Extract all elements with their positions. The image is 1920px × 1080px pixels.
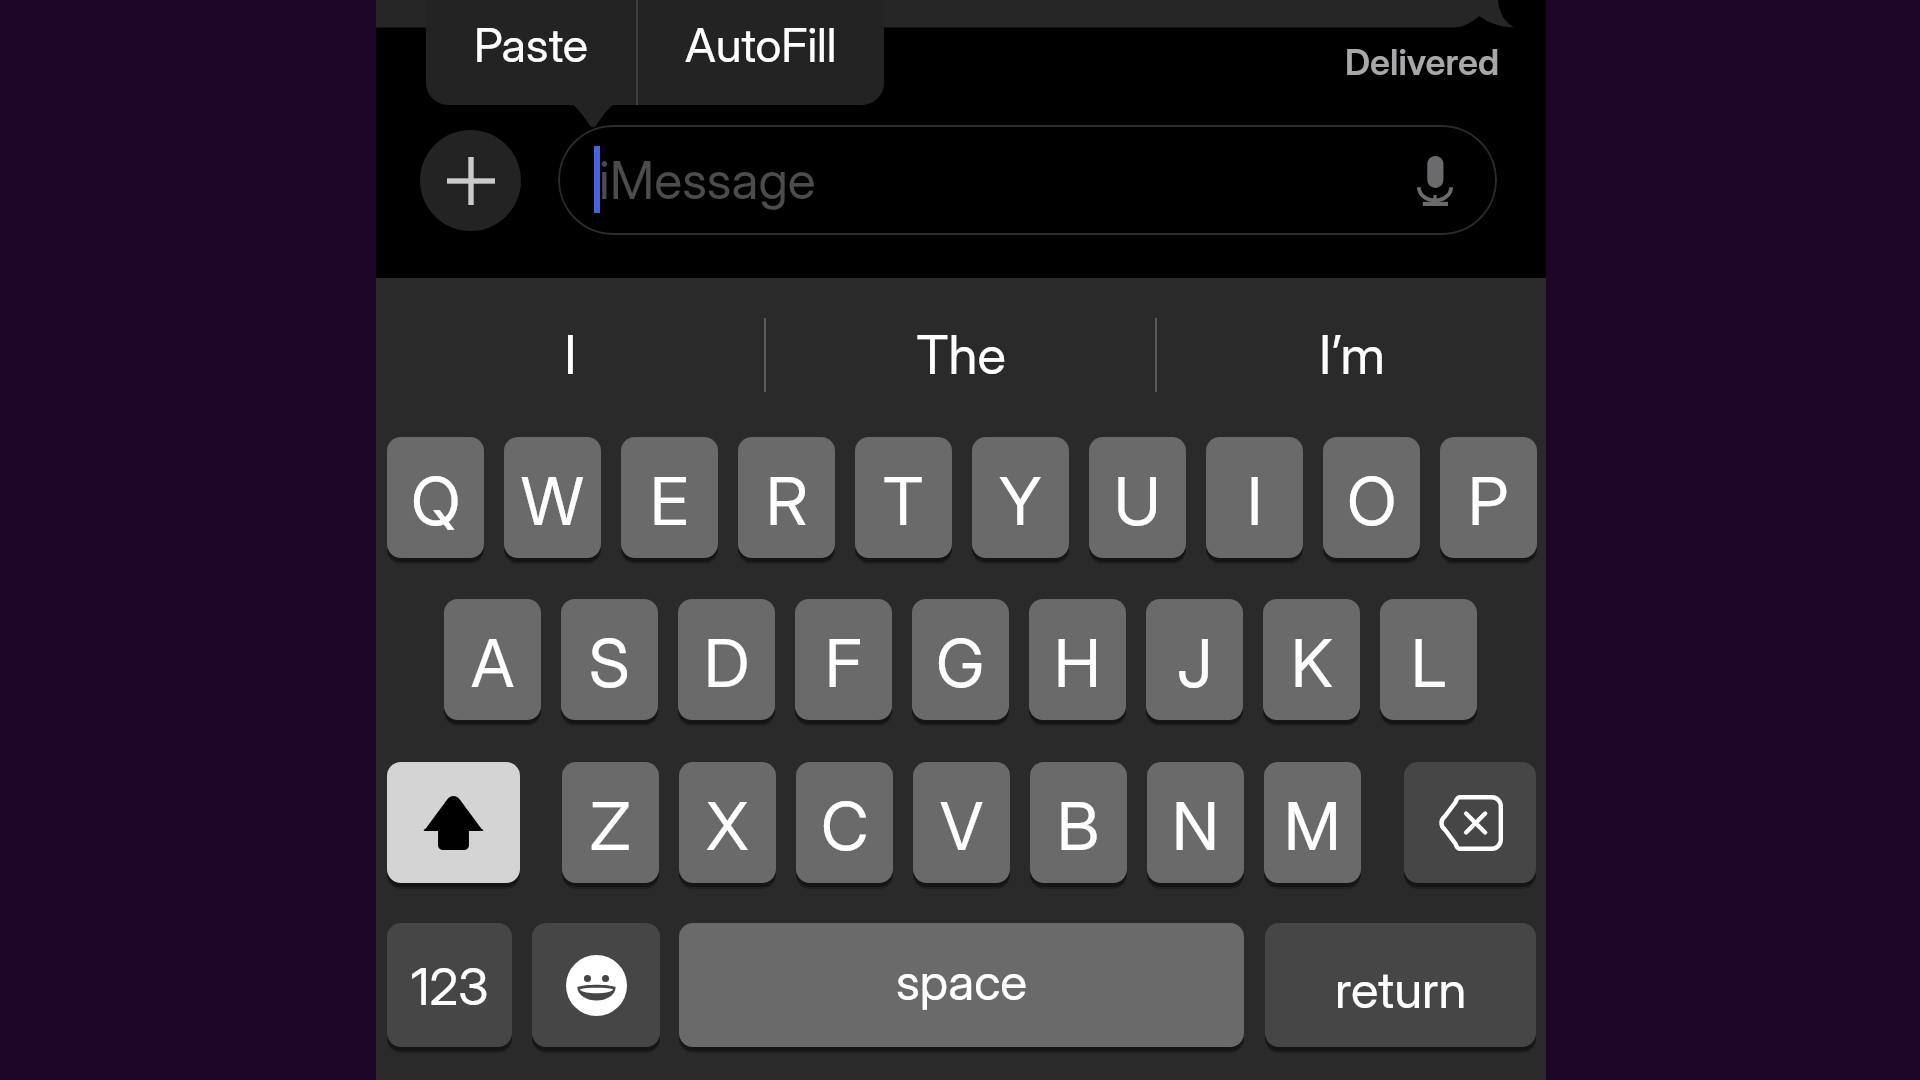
- button[interactable]: return: [1265, 923, 1536, 1047]
- button[interactable]: U: [1089, 437, 1186, 558]
- staticText: iMessage: [599, 149, 816, 212]
- button[interactable]: M: [1264, 762, 1361, 883]
- button[interactable]: G: [912, 599, 1009, 720]
- staticText: L: [1411, 623, 1447, 703]
- button[interactable]: N: [1147, 762, 1244, 883]
- button[interactable]: V: [913, 762, 1010, 883]
- button[interactable]: F: [795, 599, 892, 720]
- staticText: I: [564, 323, 577, 387]
- button[interactable]: O: [1323, 437, 1420, 558]
- staticText: J: [1177, 623, 1213, 703]
- button[interactable]: R: [738, 437, 835, 558]
- staticText: M: [1284, 786, 1341, 866]
- button[interactable]: J: [1146, 599, 1243, 720]
- button[interactable]: X: [679, 762, 776, 883]
- staticText: return: [1335, 959, 1467, 1021]
- button[interactable]: D: [678, 599, 775, 720]
- staticText: Y: [999, 461, 1042, 541]
- button[interactable]: Backspace: [1404, 762, 1536, 883]
- button[interactable]: Add attachment: [420, 130, 521, 231]
- button[interactable]: space: [679, 923, 1244, 1047]
- staticText: Q: [411, 461, 461, 541]
- button[interactable]: L: [1380, 599, 1477, 720]
- button[interactable]: C: [796, 762, 893, 883]
- button[interactable]: B: [1030, 762, 1127, 883]
- staticText: F: [825, 623, 862, 703]
- button[interactable]: I’m: [1157, 278, 1546, 431]
- staticText: H: [1054, 623, 1101, 703]
- staticText: AutoFill: [685, 16, 837, 73]
- button[interactable]: E: [621, 437, 718, 558]
- button[interactable]: K: [1263, 599, 1360, 720]
- button[interactable]: The: [766, 278, 1155, 431]
- staticText: D: [704, 623, 750, 703]
- staticText: N: [1172, 786, 1219, 866]
- button[interactable]: Q: [387, 437, 484, 558]
- button[interactable]: Paste: [426, 0, 636, 105]
- staticText: R: [766, 461, 808, 541]
- staticText: space: [896, 952, 1028, 1012]
- button[interactable]: T: [855, 437, 952, 558]
- button[interactable]: Y: [972, 437, 1069, 558]
- staticText: O: [1347, 461, 1397, 541]
- staticText: E: [650, 461, 689, 541]
- staticText: P: [1468, 461, 1509, 541]
- staticText: 123: [411, 956, 489, 1018]
- button[interactable]: A: [444, 599, 541, 720]
- button[interactable]: 123: [387, 923, 512, 1047]
- button[interactable]: I: [1206, 437, 1303, 558]
- staticText: Z: [590, 786, 631, 866]
- staticText: W: [521, 461, 584, 541]
- staticText: I’m: [1319, 323, 1385, 387]
- button[interactable]: Shift: [387, 762, 520, 883]
- staticText: G: [936, 623, 985, 703]
- staticText: K: [1291, 623, 1333, 703]
- button[interactable]: iMessage: [558, 125, 1497, 235]
- button[interactable]: S: [561, 599, 658, 720]
- button[interactable]: AutoFill: [638, 0, 884, 105]
- staticText: C: [821, 786, 869, 866]
- button[interactable]: I: [376, 278, 764, 431]
- staticText: V: [940, 786, 984, 866]
- staticText: I: [1247, 461, 1263, 541]
- staticText: Paste: [474, 16, 589, 73]
- staticText: T: [883, 461, 924, 541]
- staticText: B: [1057, 786, 1100, 866]
- button[interactable]: Z: [562, 762, 659, 883]
- staticText: U: [1114, 461, 1161, 541]
- staticText: A: [471, 623, 515, 703]
- button[interactable]: P: [1440, 437, 1537, 558]
- button[interactable]: H: [1029, 599, 1126, 720]
- button[interactable]: Emoji keyboard: [532, 923, 660, 1047]
- staticText: S: [589, 623, 630, 703]
- button[interactable]: W: [504, 437, 601, 558]
- staticText: The: [916, 323, 1006, 387]
- staticText: X: [706, 786, 749, 866]
- staticText: Delivered: [1345, 40, 1500, 84]
